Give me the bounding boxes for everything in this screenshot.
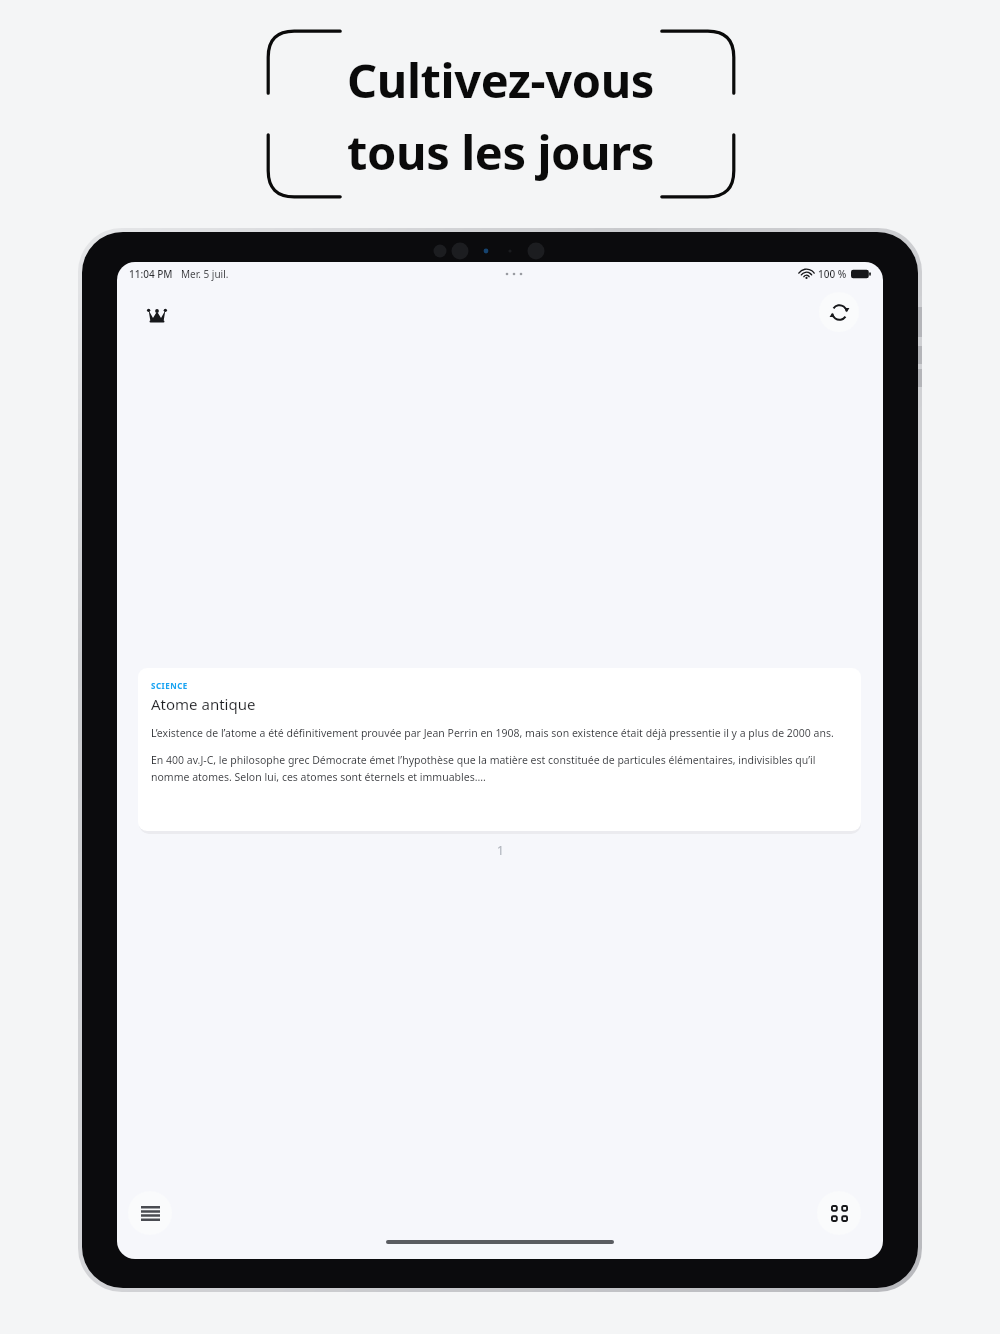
staticText: Atome antique	[151, 694, 256, 714]
button[interactable]: Premium	[135, 294, 179, 338]
button[interactable]: Grid view	[817, 1191, 861, 1235]
button[interactable]: List	[128, 1191, 172, 1235]
staticText: tous les jours	[347, 120, 654, 184]
staticText: Mer. 5 juil.	[181, 267, 229, 281]
button[interactable]: Refresh	[819, 292, 859, 332]
staticText: 1	[497, 842, 504, 858]
staticText: Cultivez-vous	[347, 48, 654, 112]
staticText: 11:04 PM	[129, 267, 173, 281]
staticText: En 400 av.J-C, le philosophe grec Démocr…	[151, 753, 848, 784]
staticText: L’existence de l’atome a été définitivem…	[151, 726, 834, 740]
button[interactable]: SCIENCE	[138, 668, 861, 831]
staticText: SCIENCE	[151, 680, 188, 691]
staticText: 100 %	[818, 267, 847, 281]
